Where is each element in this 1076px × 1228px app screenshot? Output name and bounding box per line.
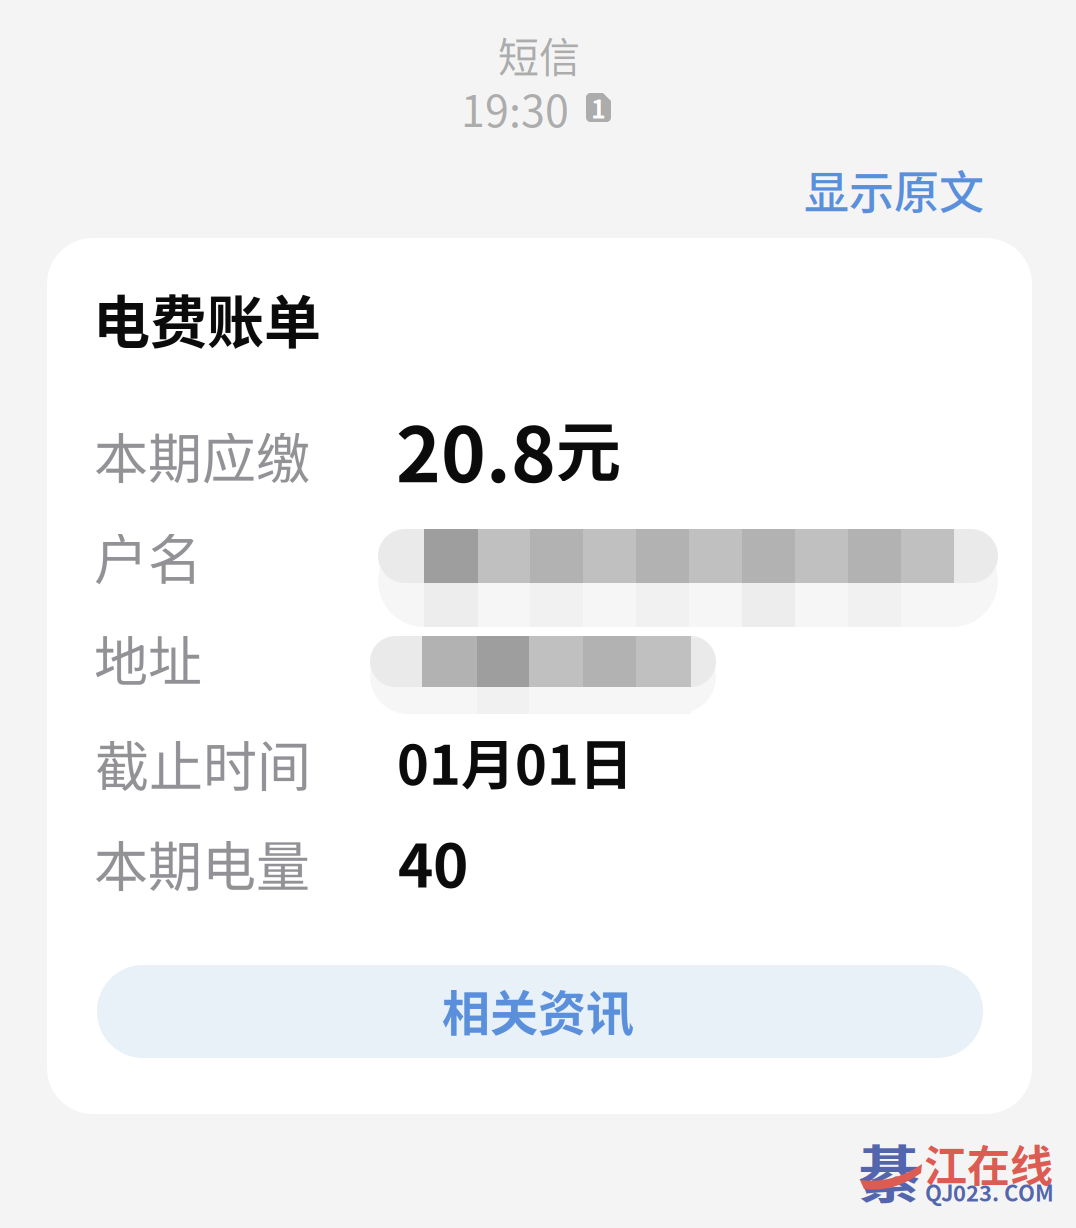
staticText: 40 <box>398 818 468 905</box>
staticText: 1 <box>591 89 606 126</box>
staticText: 本期电量 <box>94 824 310 902</box>
staticText: 19:30 <box>461 77 569 139</box>
staticText: 元 <box>556 400 621 494</box>
staticText: 短信 <box>498 25 580 84</box>
staticText: 01月01日 <box>397 722 633 800</box>
staticText: 江在线 <box>924 1132 1053 1194</box>
staticText: 綦 <box>858 1126 920 1216</box>
staticText: 地址 <box>94 619 202 697</box>
staticText: 20.8 <box>396 394 556 504</box>
staticText: 户名 <box>94 517 202 595</box>
staticText: 显示原文 <box>804 157 984 222</box>
staticText: 相关资讯 <box>442 975 634 1044</box>
staticText: 电费账单 <box>93 277 321 359</box>
button[interactable]: 相关资讯 <box>97 965 983 1058</box>
staticText: 本期应缴 <box>94 416 310 494</box>
staticText: QJ023. COM <box>925 1176 1054 1208</box>
staticText: 截止时间 <box>95 724 311 802</box>
button[interactable]: 显示原文 <box>766 148 1002 234</box>
